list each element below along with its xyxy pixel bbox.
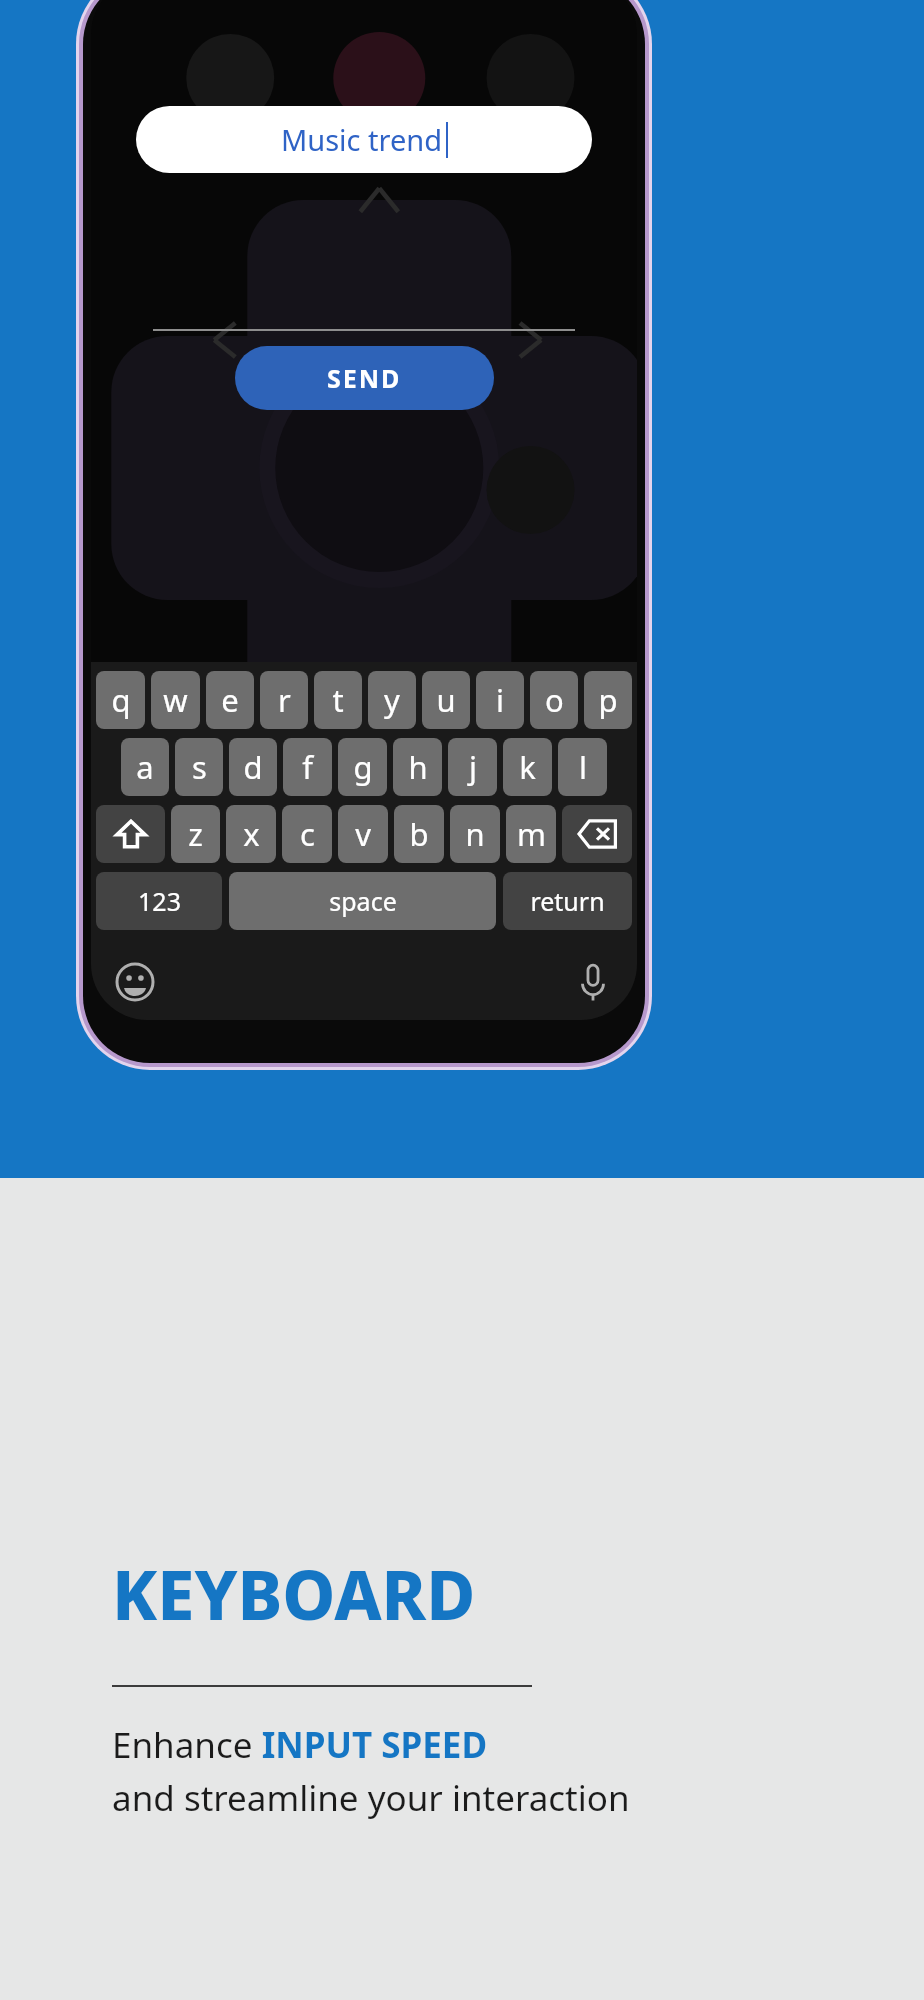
button[interactable]: Emoji keyboard: [112, 959, 158, 1005]
staticText: c: [300, 813, 315, 855]
button[interactable]: i: [476, 671, 524, 729]
staticText: f: [302, 746, 313, 788]
button[interactable]: Voice input: [570, 959, 616, 1005]
button[interactable]: y: [368, 671, 416, 729]
button[interactable]: t: [314, 671, 362, 729]
staticText: x: [243, 813, 260, 855]
staticText: q: [111, 679, 131, 721]
button[interactable]: p: [584, 671, 632, 729]
button[interactable]: l: [558, 738, 607, 796]
staticText: d: [243, 746, 263, 788]
button[interactable]: n: [450, 805, 500, 863]
staticText: e: [221, 679, 239, 721]
staticText: z: [188, 813, 203, 855]
staticText: s: [192, 746, 207, 788]
button[interactable]: q: [96, 671, 145, 729]
staticText: k: [519, 746, 536, 788]
button[interactable]: r: [260, 671, 308, 729]
button[interactable]: SEND: [235, 346, 494, 410]
staticText: SEND: [327, 361, 402, 395]
staticText: h: [408, 746, 428, 788]
staticText: w: [163, 679, 188, 721]
staticText: i: [496, 679, 504, 721]
button[interactable]: f: [283, 738, 332, 796]
staticText: m: [517, 813, 546, 855]
button[interactable]: o: [530, 671, 578, 729]
staticText: space: [329, 884, 397, 918]
button[interactable]: space: [229, 872, 496, 930]
button[interactable]: 123: [96, 872, 222, 930]
button[interactable]: s: [175, 738, 223, 796]
button[interactable]: w: [151, 671, 200, 729]
staticText: p: [598, 679, 618, 721]
button[interactable]: c: [282, 805, 332, 863]
staticText: b: [409, 813, 429, 855]
button[interactable]: b: [394, 805, 444, 863]
button[interactable]: Music trend: [136, 106, 592, 173]
button[interactable]: Backspace: [562, 805, 632, 863]
staticText: y: [384, 679, 400, 721]
button[interactable]: return: [503, 872, 632, 930]
button[interactable]: k: [503, 738, 552, 796]
staticText: 123: [138, 884, 181, 918]
staticText: Enhance INPUT SPEED and streamline your …: [112, 1721, 630, 1821]
button[interactable]: Shift: [96, 805, 165, 863]
button[interactable]: z: [171, 805, 220, 863]
button[interactable]: x: [226, 805, 276, 863]
button[interactable]: h: [393, 738, 442, 796]
staticText: r: [278, 679, 291, 721]
button[interactable]: m: [506, 805, 556, 863]
staticText: return: [530, 884, 605, 918]
button[interactable]: j: [448, 738, 497, 796]
staticText: a: [136, 746, 154, 788]
button[interactable]: e: [206, 671, 254, 729]
button[interactable]: v: [338, 805, 388, 863]
staticText: v: [355, 813, 371, 855]
staticText: j: [469, 746, 477, 788]
button[interactable]: g: [338, 738, 387, 796]
staticText: g: [353, 746, 373, 788]
button[interactable]: a: [121, 738, 169, 796]
staticText: u: [436, 679, 456, 721]
button[interactable]: d: [229, 738, 277, 796]
staticText: n: [465, 813, 485, 855]
staticText: KEYBOARD: [112, 1548, 476, 1639]
staticText: Music trend: [281, 120, 443, 159]
staticText: t: [332, 679, 344, 721]
staticText: l: [579, 746, 587, 788]
button[interactable]: u: [422, 671, 470, 729]
staticText: o: [545, 679, 564, 721]
